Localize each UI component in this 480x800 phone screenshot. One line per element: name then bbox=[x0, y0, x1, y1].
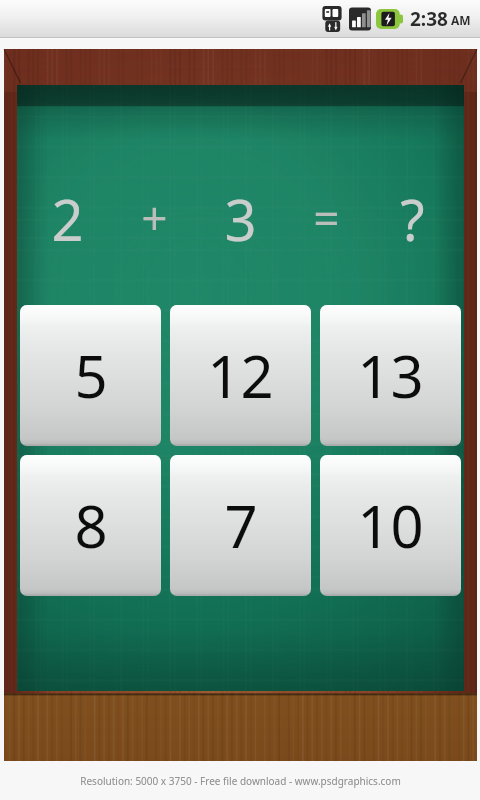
staticText: 13 bbox=[357, 336, 424, 415]
staticText: ? bbox=[400, 181, 425, 253]
button[interactable]: 12 bbox=[170, 305, 311, 446]
staticText: Resolution: 5000 x 3750 - Free file down… bbox=[80, 774, 401, 788]
staticText: 2 bbox=[51, 181, 84, 253]
button[interactable]: 5 bbox=[20, 305, 161, 446]
staticText: 12 bbox=[207, 336, 274, 415]
staticText: 3 bbox=[224, 181, 257, 253]
staticText: 8 bbox=[74, 486, 108, 565]
button[interactable]: 10 bbox=[320, 455, 461, 596]
staticText: + bbox=[141, 186, 168, 249]
button[interactable]: 8 bbox=[20, 455, 161, 596]
staticText: 5 bbox=[74, 336, 108, 415]
staticText: 7 bbox=[224, 486, 258, 565]
staticText: 10 bbox=[357, 486, 424, 565]
staticText: AM bbox=[451, 12, 471, 28]
staticText: = bbox=[313, 186, 340, 249]
staticText: 2:38 bbox=[410, 6, 448, 32]
button[interactable]: 13 bbox=[320, 305, 461, 446]
button[interactable]: 7 bbox=[170, 455, 311, 596]
